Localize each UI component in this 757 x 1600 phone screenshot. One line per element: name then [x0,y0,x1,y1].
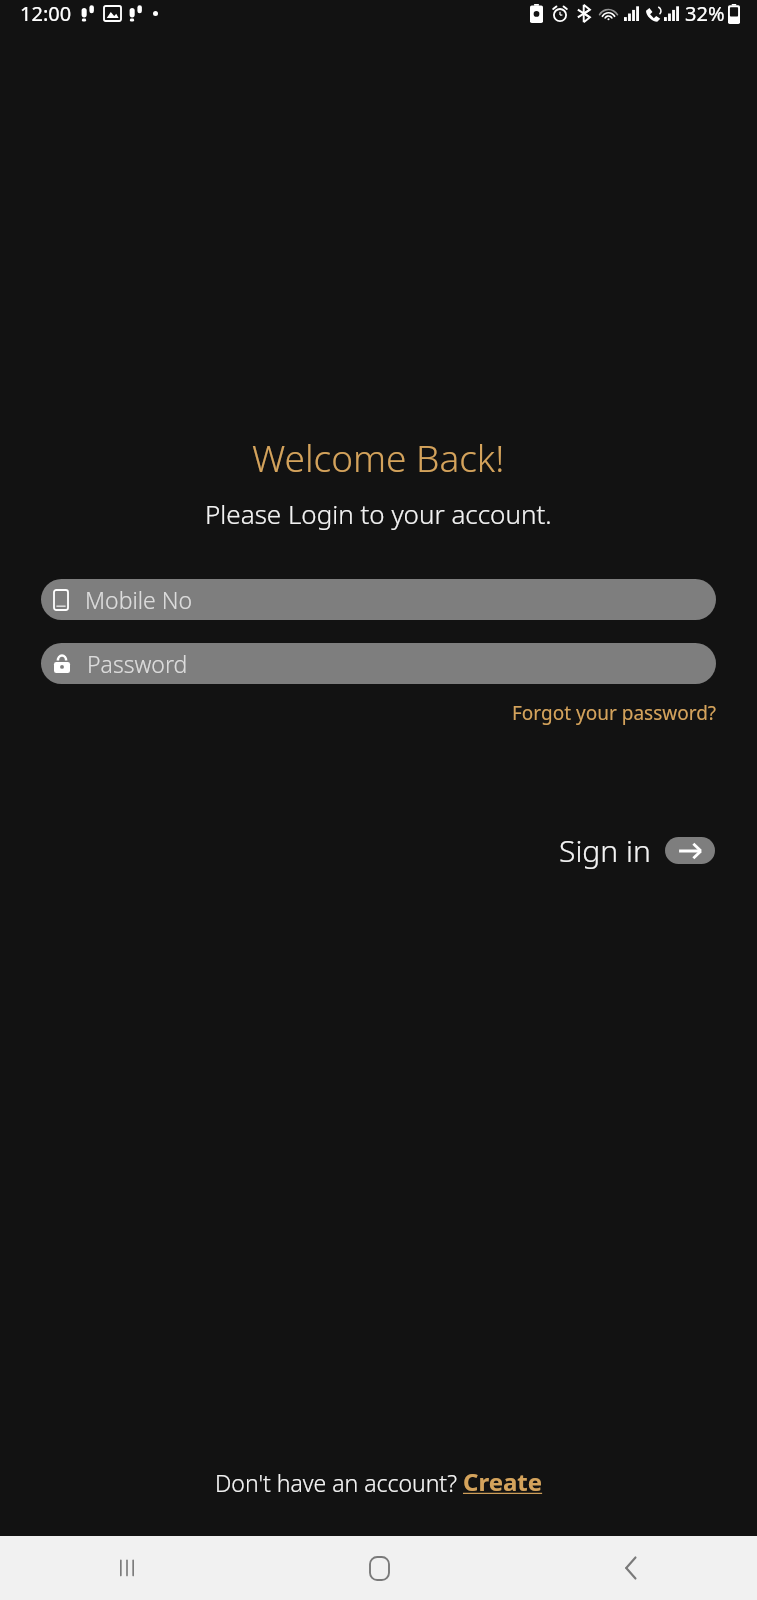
staticText: Forgot your password? [512,700,717,726]
staticText: 12:00 [20,0,72,27]
staticText: Don't have an account? [215,1467,463,1498]
staticText: Password [87,648,188,679]
staticText: Please Login to your account. [205,496,552,531]
staticText: 32% [685,0,725,27]
button[interactable]: Recent apps [0,1536,253,1600]
button[interactable]: Home [253,1536,505,1600]
button[interactable]: Mobile No [41,579,716,620]
staticText: Create [463,1465,543,1498]
button[interactable]: Create [463,1465,543,1498]
staticText: Mobile No [85,584,193,615]
button[interactable]: Forgot your password? [508,696,721,730]
button[interactable]: Sign in [553,824,721,877]
other: Sign in [677,842,703,860]
button[interactable]: Back [505,1536,757,1600]
staticText: Welcome Back! [252,432,505,482]
staticText: Sign in [559,830,651,871]
button[interactable]: Password [41,643,716,684]
